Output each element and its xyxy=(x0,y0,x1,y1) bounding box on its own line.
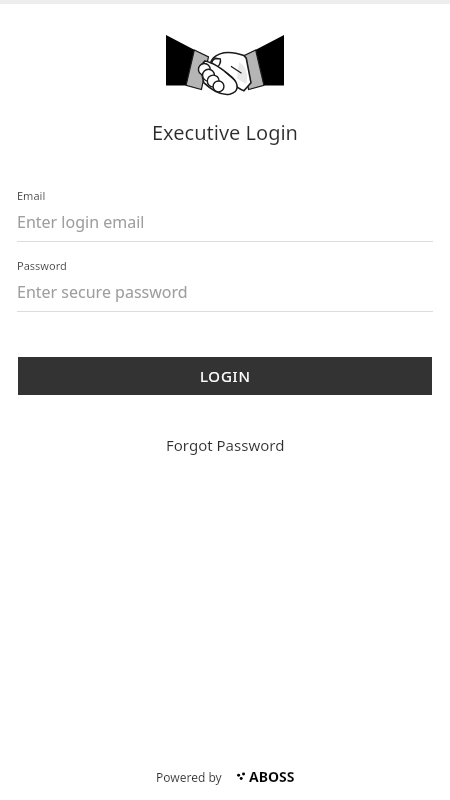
staticText: Password xyxy=(17,258,67,273)
other: ABOSS mark xyxy=(236,770,249,783)
staticText: Forgot Password xyxy=(166,435,285,455)
button[interactable]: Password xyxy=(0,258,450,312)
other: Handshake logo xyxy=(166,31,284,99)
staticText: ABOSS xyxy=(249,767,295,786)
staticText: Powered by xyxy=(156,769,222,785)
staticText: Email xyxy=(17,188,46,203)
button[interactable]: Forgot Password xyxy=(154,431,297,459)
button[interactable]: LOGIN xyxy=(18,357,432,395)
staticText: Enter secure password xyxy=(17,281,188,303)
staticText: Executive Login xyxy=(152,119,298,146)
button[interactable]: Email xyxy=(0,188,450,242)
staticText: Enter login email xyxy=(17,211,145,233)
staticText: LOGIN xyxy=(200,366,251,386)
